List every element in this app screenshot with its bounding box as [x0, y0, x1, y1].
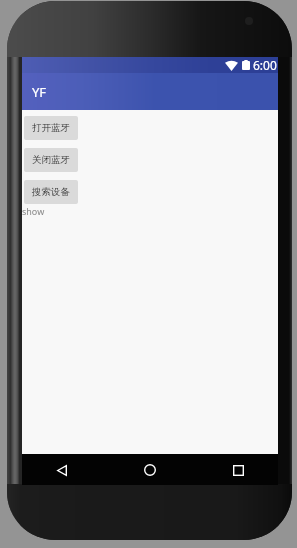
staticText: 6:00: [253, 57, 277, 73]
button[interactable]: Recent apps: [223, 455, 254, 486]
button[interactable]: Home: [134, 454, 165, 485]
staticText: YF: [32, 83, 47, 101]
button[interactable]: Back: [46, 455, 77, 486]
button[interactable]: 关闭蓝牙: [24, 148, 78, 172]
staticText: 搜索设备: [32, 186, 70, 198]
button[interactable]: 打开蓝牙: [24, 116, 78, 140]
staticText: 关闭蓝牙: [32, 154, 70, 166]
button[interactable]: 搜索设备: [24, 180, 78, 204]
staticText: 打开蓝牙: [32, 122, 70, 134]
staticText: show: [22, 205, 45, 217]
